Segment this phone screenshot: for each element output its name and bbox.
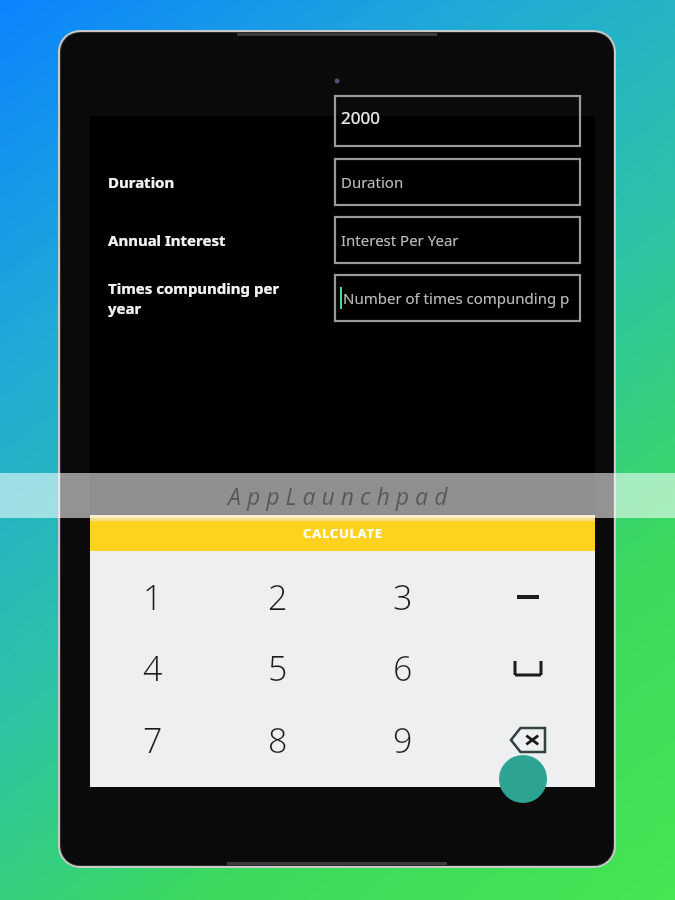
button[interactable]: 5	[228, 640, 328, 696]
button[interactable]: 2000	[335, 116, 580, 146]
button[interactable]: Enter	[499, 755, 547, 803]
staticText: A p p L a u n c h p a d	[228, 480, 448, 511]
staticText: Interest Per Year	[341, 230, 459, 250]
staticText: Annual Interest	[108, 230, 226, 250]
staticText: 8	[268, 717, 288, 763]
button[interactable]: Number of times compunding p	[335, 275, 580, 321]
staticText: 1	[143, 574, 163, 620]
button[interactable]: Duration	[335, 159, 580, 205]
staticText: 2	[268, 574, 288, 620]
button[interactable]: Backspace	[478, 712, 578, 768]
button[interactable]: 8	[228, 712, 328, 768]
staticText: 6	[393, 645, 413, 691]
button[interactable]: 1	[103, 569, 203, 625]
button[interactable]: 2	[228, 569, 328, 625]
staticText: 2000	[341, 106, 380, 129]
staticText: 4	[143, 645, 163, 691]
button[interactable]: 3	[353, 569, 453, 625]
staticText: Number of times compunding p	[343, 288, 570, 308]
staticText: 9	[393, 717, 413, 763]
staticText: Duration	[341, 172, 404, 192]
button[interactable]: 9	[353, 712, 453, 768]
button[interactable]: Interest Per Year	[335, 217, 580, 263]
staticText: 5	[268, 645, 288, 691]
button[interactable]: Space	[478, 640, 578, 696]
staticText: Duration	[108, 172, 175, 192]
staticText: 3	[393, 574, 413, 620]
button[interactable]	[478, 569, 578, 625]
staticText: 7	[143, 717, 163, 763]
button[interactable]: 6	[353, 640, 453, 696]
button[interactable]: 4	[103, 640, 203, 696]
staticText: Times compunding per year	[108, 278, 280, 318]
button[interactable]: CALCULATE	[90, 515, 595, 551]
staticText: CALCULATE	[303, 524, 383, 542]
button[interactable]: 7	[103, 712, 203, 768]
